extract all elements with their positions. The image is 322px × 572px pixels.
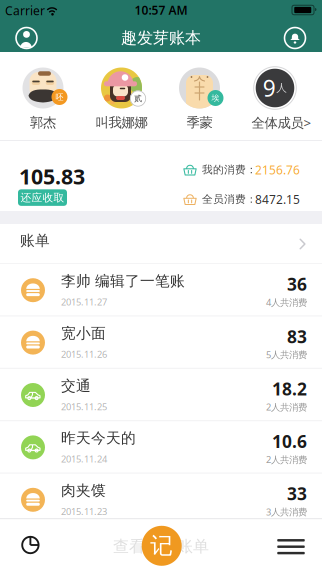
staticText: 昨天今天的 [61, 429, 136, 447]
staticText: 贰 [134, 94, 142, 103]
staticText: 全体成员> [251, 114, 311, 131]
staticText: 2015.11.27 [61, 296, 107, 308]
staticText: 8472.15 [255, 191, 300, 207]
staticText: 2156.76 [255, 162, 300, 178]
staticText: 10.6 [272, 430, 307, 453]
staticText: 查看全部账单 [113, 537, 209, 556]
staticText: 人 [276, 81, 287, 94]
staticText: 5人共消费 [266, 348, 307, 361]
staticText: 9 [263, 73, 276, 103]
staticText: 交通 [61, 377, 91, 395]
staticText: 季蒙 [186, 114, 212, 131]
staticText: 呸 [55, 92, 63, 102]
staticText: 33 [287, 482, 307, 505]
staticText: Carrier [5, 2, 45, 18]
staticText: 105.83 [19, 162, 85, 190]
staticText: 2人共消费 [266, 453, 307, 466]
staticText: 郭杰 [30, 114, 56, 131]
staticText: 埃 [211, 93, 219, 103]
staticText: 3人共消费 [266, 506, 307, 518]
staticText: 4人共消费 [266, 296, 307, 308]
staticText: 36 [287, 272, 307, 295]
staticText: 18.2 [272, 377, 307, 400]
staticText: 2015.11.26 [61, 348, 107, 360]
staticText: 2015.11.25 [61, 400, 107, 413]
staticText: 肉夹馍 [61, 482, 106, 500]
staticText: 还应收取 [20, 191, 64, 204]
staticText: 宽小面 [61, 324, 106, 342]
staticText: 趣发芽账本 [121, 28, 201, 48]
staticText: 10:57 AM [134, 2, 187, 18]
staticText: 记 [150, 532, 173, 560]
staticText: 叫我娜娜 [95, 114, 147, 131]
staticText: 李帅 编辑了一笔账 [61, 272, 185, 290]
staticText: 2015.11.24 [61, 453, 107, 465]
staticText: 2人共消费 [266, 401, 307, 413]
staticText: 83 [287, 325, 307, 348]
staticText: 2015.11.23 [61, 505, 107, 518]
staticText: 全员消费： [202, 193, 257, 206]
staticText: 我的消费： [202, 163, 257, 176]
staticText: 账单 [20, 231, 50, 249]
